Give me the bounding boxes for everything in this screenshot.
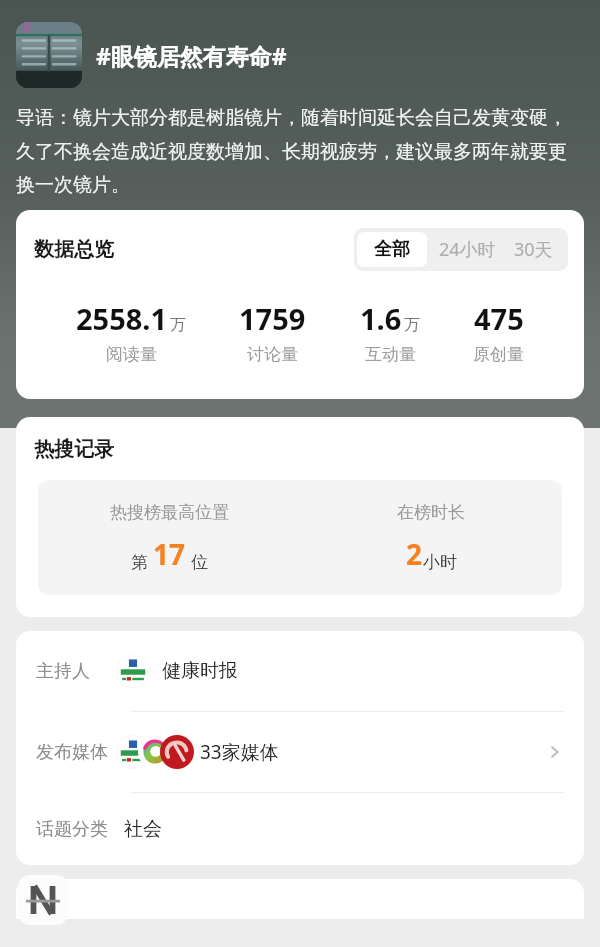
staticText: 2 bbox=[406, 535, 423, 573]
staticText: 智慧海都APP bbox=[78, 880, 257, 921]
staticText: 导语：镜片大部分都是树脂镜片，随着时间延长会自己发黄变硬，久了不换会造成近视度数… bbox=[16, 106, 584, 196]
staticText: 小时 bbox=[423, 552, 457, 573]
staticText: 475 bbox=[474, 299, 524, 338]
staticText: 互动量 bbox=[365, 344, 416, 365]
button[interactable]: 30天 bbox=[508, 231, 565, 268]
staticText: 在榜时长 bbox=[397, 502, 465, 523]
staticText: 33家媒体 bbox=[200, 739, 279, 765]
staticText: 数据总览 bbox=[34, 237, 114, 262]
staticText: 1759 bbox=[239, 299, 306, 338]
button[interactable]: 24小时 bbox=[427, 231, 508, 268]
staticText: 2558.1 bbox=[76, 299, 168, 338]
staticText: 1.6 bbox=[360, 299, 402, 338]
button[interactable]: 发布媒体 bbox=[16, 712, 584, 792]
staticText: 话题分类 bbox=[36, 818, 108, 841]
staticText: 原创量 bbox=[473, 344, 524, 365]
staticText: 阅读量 bbox=[106, 344, 157, 365]
staticText: 热搜记录 bbox=[34, 437, 114, 462]
staticText: 万 bbox=[404, 315, 420, 335]
staticText: 17 bbox=[153, 535, 186, 573]
staticText: 全部 bbox=[374, 238, 410, 261]
staticText: 发布媒体 bbox=[36, 741, 108, 764]
button[interactable]: 全部 bbox=[357, 232, 427, 267]
staticText: 24小时 bbox=[439, 237, 496, 262]
staticText: 热搜榜最高位置 bbox=[110, 502, 229, 523]
button[interactable]: 话题分类 bbox=[16, 793, 584, 865]
button[interactable]: 主持人 bbox=[16, 631, 584, 711]
staticText: 万 bbox=[170, 315, 186, 335]
staticText: 第 bbox=[131, 552, 148, 573]
staticText: 讨论量 bbox=[247, 344, 298, 365]
staticText: 社会 bbox=[124, 817, 162, 841]
staticText: 位 bbox=[191, 552, 208, 573]
staticText: 健康时报 bbox=[162, 659, 238, 683]
staticText: 30天 bbox=[514, 237, 553, 262]
staticText: #眼镜居然有寿命# bbox=[96, 40, 287, 71]
button[interactable] bbox=[16, 22, 82, 88]
staticText: 主持人 bbox=[36, 660, 90, 683]
